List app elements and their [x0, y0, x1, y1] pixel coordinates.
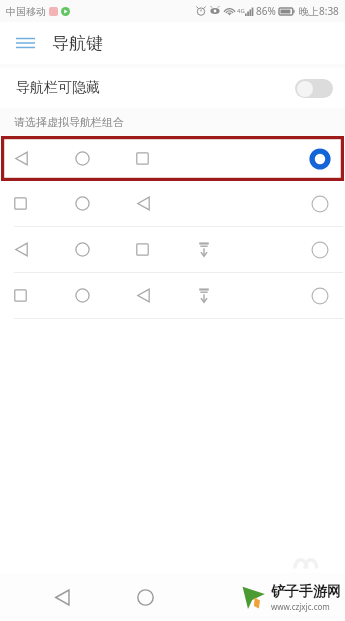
- button[interactable]: 已选中: [0, 136, 345, 181]
- button[interactable]: 选择此组合: [0, 181, 345, 227]
- button[interactable]: Back: [42, 577, 82, 617]
- staticText: 铲子手游网: [271, 583, 341, 601]
- staticText: 请选择虚拟导航栏组合: [14, 115, 124, 129]
- staticText: 导航键: [52, 33, 103, 54]
- staticText: 导航栏可隐藏: [16, 79, 100, 97]
- staticText: 中国移动: [6, 5, 46, 18]
- button[interactable]: 选择此组合: [309, 285, 331, 307]
- staticText: www.czjxjc.com: [271, 601, 330, 612]
- button[interactable]: 导航栏可隐藏: [0, 68, 345, 108]
- button[interactable]: Menu: [8, 26, 42, 60]
- button[interactable]: Home: [125, 577, 165, 617]
- button[interactable]: 选择此组合: [309, 239, 331, 261]
- button[interactable]: 选择此组合: [309, 193, 331, 215]
- staticText: 晚上8:38: [299, 4, 339, 18]
- staticText: 4G: [237, 7, 245, 15]
- button[interactable]: 已选中: [309, 148, 331, 170]
- button[interactable]: 选择此组合: [0, 227, 345, 273]
- button[interactable]: 导航栏可隐藏 开关: [295, 79, 333, 98]
- staticText: 86%: [256, 4, 276, 18]
- button[interactable]: 选择此组合: [0, 273, 345, 319]
